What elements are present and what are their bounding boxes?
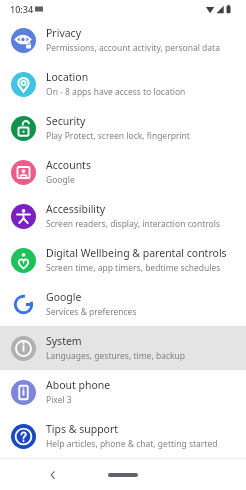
staticText: Play Protect, screen lock, fingerprint — [46, 130, 190, 142]
staticText: Services & preferences — [46, 306, 137, 318]
staticText: Help articles, phone & chat, getting sta… — [46, 438, 218, 450]
staticText: Languages, gestures, time, backup — [46, 350, 186, 362]
staticText: Accessibility — [46, 202, 106, 216]
staticText: Google — [46, 174, 75, 186]
staticText: Permissions, account activity, personal … — [46, 42, 220, 54]
staticText: Pixel 3 — [46, 394, 72, 406]
staticText: Digital Wellbeing & parental controls — [46, 246, 227, 260]
button[interactable]: About phone — [0, 370, 246, 414]
button[interactable]: System — [0, 326, 246, 370]
staticText: Location — [46, 70, 89, 84]
button[interactable]: Accounts — [0, 150, 246, 194]
staticText: 10:34 — [10, 3, 34, 15]
button[interactable]: Digital Wellbeing & parental controls — [0, 238, 246, 282]
staticText: Tips & support — [46, 422, 119, 436]
staticText: On - 8 apps have access to location — [46, 86, 186, 98]
button[interactable]: Accessibility — [0, 194, 246, 238]
staticText: About phone — [46, 378, 111, 392]
staticText: Screen readers, display, interaction con… — [46, 218, 220, 230]
staticText: System — [46, 334, 82, 348]
staticText: Screen time, app timers, bedtime schedul… — [46, 262, 221, 274]
staticText: Security — [46, 114, 86, 128]
button[interactable]: Back — [42, 464, 64, 486]
button[interactable]: Tips & support — [0, 414, 246, 458]
staticText: Accounts — [46, 158, 91, 172]
staticText: Google — [46, 290, 82, 304]
button[interactable]: Google — [0, 282, 246, 326]
button[interactable]: Home — [106, 468, 140, 482]
button[interactable]: Location — [0, 62, 246, 106]
button[interactable]: Privacy — [0, 18, 246, 62]
button[interactable]: Security — [0, 106, 246, 150]
staticText: Privacy — [46, 26, 82, 40]
